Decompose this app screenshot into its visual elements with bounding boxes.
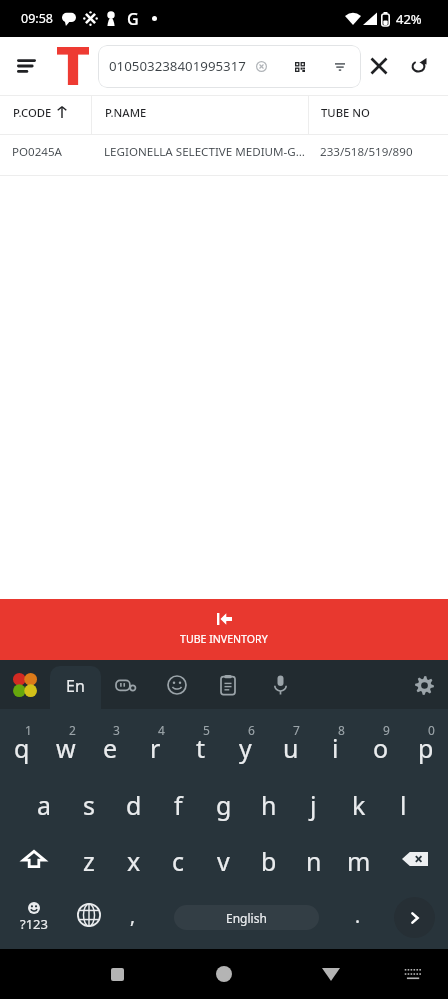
button[interactable]: Voice input [264,669,296,701]
button[interactable]: . [336,891,380,949]
button[interactable]: 9 [358,717,403,775]
button[interactable]: d [111,775,156,833]
staticText: 09:58 [21,10,53,27]
button[interactable]: , [111,891,155,949]
button[interactable]: l [381,775,426,833]
staticText: k [352,788,366,822]
staticText: x [127,844,141,878]
staticText: 5 [203,722,210,738]
staticText: r [150,731,161,765]
staticText: c [172,844,185,878]
button[interactable]: Hide keyboard [308,951,354,997]
button[interactable]: Settings [408,669,440,701]
button[interactable]: a [22,775,66,833]
button[interactable]: 8 [313,717,358,775]
button[interactable]: b [246,833,291,891]
button[interactable]: 010503238401995317 [98,45,361,88]
button[interactable]: ?123 [0,891,67,949]
staticText: 233/518/519/890 [320,144,413,160]
button[interactable]: j [291,775,336,833]
staticText: u [283,731,299,765]
staticText: t [196,731,206,765]
button[interactable]: x [111,833,156,891]
button[interactable]: v [201,833,246,891]
staticText: PO0245A [12,144,63,160]
button[interactable]: Backspace [381,833,448,891]
staticText: TUBE NO [321,105,370,120]
button[interactable]: Switch keyboard [390,951,436,997]
staticText: TUBE INVENTORY [180,632,268,646]
button[interactable]: g [201,775,246,833]
button[interactable]: 5 [178,717,223,775]
staticText: 6 [248,722,255,738]
button[interactable]: z [67,833,111,891]
staticText: o [373,731,389,765]
button[interactable]: 2 [44,717,88,775]
button[interactable]: Apps [12,672,38,698]
staticText: 010503238401995317 [109,57,246,75]
button[interactable]: Change language [67,891,111,949]
button[interactable]: c [156,833,201,891]
staticText: m [347,844,371,878]
staticText: G [127,8,139,30]
staticText: 1 [25,722,32,738]
button[interactable]: m [336,833,381,891]
button[interactable]: Sort [8,48,44,84]
button[interactable]: 4 [133,717,178,775]
staticText: a [37,788,52,822]
staticText: , [130,903,136,929]
button[interactable]: GIF [109,669,141,701]
staticText: y [239,731,252,765]
staticText: j [310,788,317,822]
button[interactable]: PO0245A [0,135,448,175]
button[interactable]: TUBE INVENTORY [0,599,448,660]
button[interactable]: 1 [0,717,44,775]
staticText: ?123 [20,915,48,933]
button[interactable]: En [50,666,101,709]
staticText: d [126,788,142,822]
button[interactable]: Enter [394,897,435,938]
staticText: e [103,731,118,765]
button[interactable]: k [336,775,381,833]
button[interactable]: 6 [223,717,268,775]
button[interactable]: 3 [88,717,133,775]
button[interactable]: English [174,905,319,930]
button[interactable]: Home [201,951,247,997]
staticText: English [226,910,267,926]
staticText: f [174,788,183,822]
button[interactable]: f [156,775,201,833]
staticText: b [261,844,277,878]
button[interactable]: s [66,775,111,833]
button[interactable]: Shift [0,833,67,891]
staticText: 2 [69,722,76,738]
staticText: . [355,903,361,929]
staticText: 9 [383,722,390,738]
staticText: 42% [396,10,422,28]
staticText: l [400,788,407,822]
button[interactable]: h [246,775,291,833]
button[interactable]: n [291,833,336,891]
button[interactable]: Back [94,951,140,997]
staticText: s [83,788,95,822]
staticText: 7 [293,722,300,738]
staticText: v [217,844,230,878]
staticText: P.NAME [105,105,147,120]
staticText: 4 [158,722,165,738]
button[interactable]: Emoji [161,669,193,701]
button[interactable]: Clipboard [212,669,244,701]
staticText: p [418,731,434,765]
button[interactable]: 7 [268,717,313,775]
staticText: P.CODE [13,105,52,120]
staticText: n [306,844,322,878]
staticText: 3 [113,722,120,738]
button[interactable]: 0 [403,717,448,775]
button[interactable]: Close [365,52,393,80]
staticText: En [66,675,85,697]
staticText: g [216,788,232,822]
staticText: z [83,844,95,878]
staticText: 0 [428,722,435,738]
staticText: 8 [338,722,345,738]
staticText: i [332,731,339,765]
staticText: w [56,731,76,765]
button[interactable]: Refresh [404,52,432,80]
